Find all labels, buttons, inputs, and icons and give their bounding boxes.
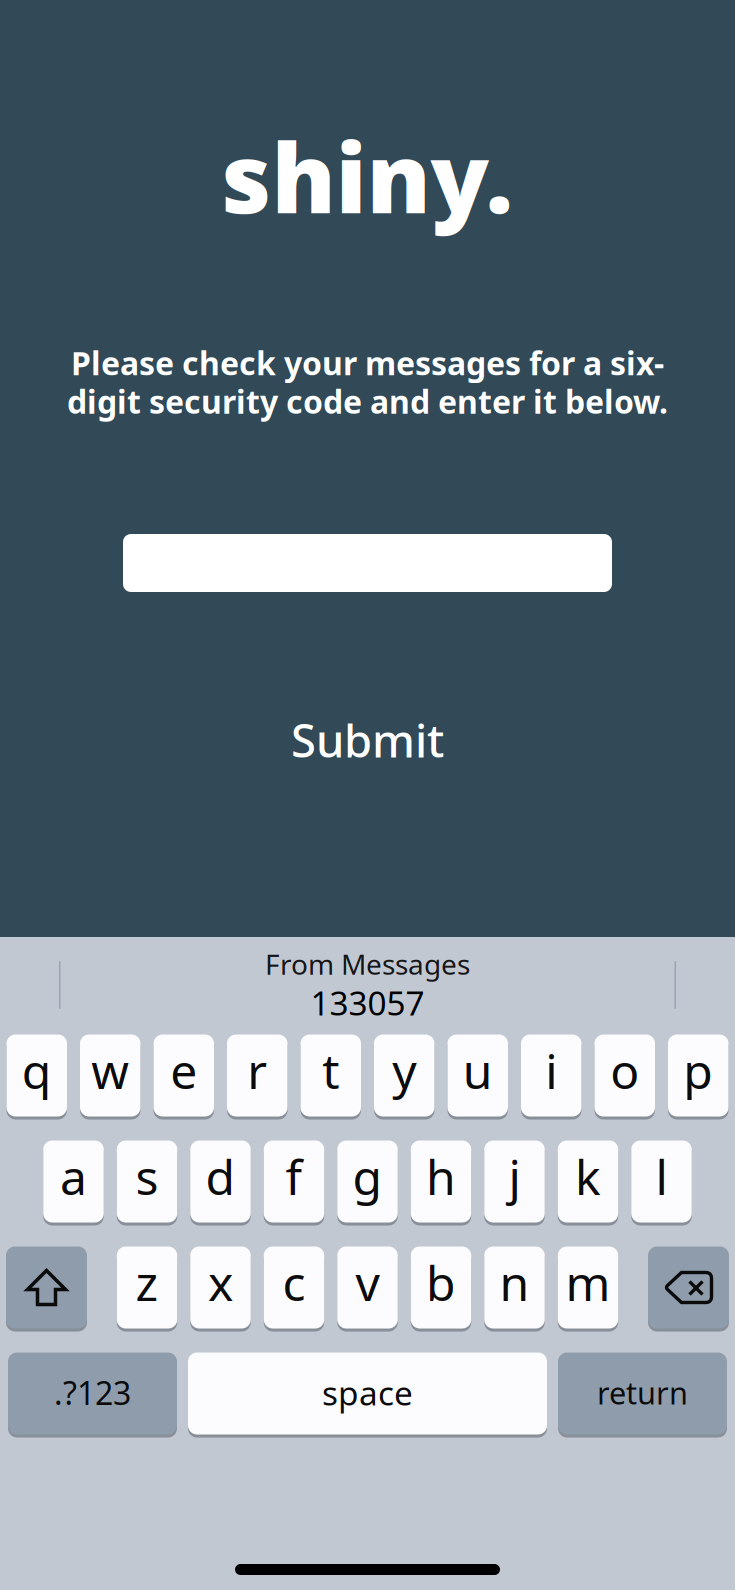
staticText: p [683, 1039, 713, 1102]
button[interactable]: n [484, 1245, 545, 1330]
staticText: space [322, 1370, 413, 1415]
button[interactable]: z [117, 1245, 177, 1330]
button[interactable]: i [521, 1033, 581, 1118]
button[interactable]: Submit [275, 698, 460, 782]
button[interactable]: o [594, 1033, 655, 1118]
staticText: c [282, 1251, 305, 1314]
button[interactable]: j [484, 1139, 545, 1224]
button[interactable]: r [227, 1033, 287, 1118]
staticText: shiny. [221, 112, 513, 240]
staticText: t [322, 1039, 339, 1102]
staticText: digit security code and enter it below. [67, 380, 668, 422]
staticText: l [655, 1145, 667, 1208]
button[interactable]: f [264, 1139, 324, 1224]
button[interactable]: m [558, 1245, 618, 1330]
staticText: i [545, 1039, 557, 1102]
button[interactable]: x [190, 1245, 251, 1330]
staticText: x [208, 1251, 233, 1314]
staticText: d [205, 1145, 235, 1208]
button[interactable]: return [558, 1351, 727, 1436]
staticText: Please check your messages for a six- [71, 341, 664, 384]
button[interactable]: a [43, 1139, 104, 1224]
staticText: j [508, 1145, 520, 1208]
button[interactable]: Delete [648, 1245, 729, 1330]
staticText: y [392, 1039, 416, 1102]
staticText: m [565, 1251, 610, 1314]
button[interactable]: space [188, 1351, 547, 1436]
button[interactable]: .?123 [8, 1351, 177, 1436]
staticText: Submit [291, 710, 444, 770]
staticText: v [355, 1251, 379, 1314]
button[interactable]: k [558, 1139, 618, 1224]
staticText: k [575, 1145, 601, 1208]
button[interactable]: s [117, 1139, 177, 1224]
button[interactable]: y [374, 1033, 434, 1118]
staticText: g [352, 1145, 382, 1208]
staticText: 133057 [310, 980, 424, 1025]
staticText: .?123 [54, 1371, 131, 1414]
staticText: e [170, 1039, 197, 1102]
button[interactable]: Shift [6, 1245, 87, 1330]
button[interactable]: w [80, 1033, 140, 1118]
staticText: r [247, 1039, 267, 1102]
staticText: u [463, 1039, 493, 1102]
button[interactable]: q [6, 1033, 67, 1118]
staticText: w [91, 1039, 129, 1102]
button[interactable]: g [337, 1139, 398, 1224]
staticText: s [135, 1145, 158, 1208]
button[interactable]: d [190, 1139, 251, 1224]
staticText: h [426, 1145, 456, 1208]
staticText: n [499, 1251, 529, 1314]
button[interactable]: v [337, 1245, 398, 1330]
button[interactable]: l [631, 1139, 692, 1224]
button[interactable]: c [264, 1245, 324, 1330]
staticText: a [60, 1145, 87, 1208]
staticText: f [285, 1145, 302, 1208]
button[interactable]: p [668, 1033, 728, 1118]
staticText: return [597, 1372, 688, 1413]
button[interactable]: h [411, 1139, 471, 1224]
button[interactable]: b [411, 1245, 471, 1330]
button[interactable]: u [447, 1033, 508, 1118]
staticText: b [426, 1251, 456, 1314]
staticText: From Messages [265, 945, 470, 982]
staticText: o [610, 1039, 639, 1102]
staticText: z [135, 1251, 158, 1314]
button[interactable]: t [300, 1033, 361, 1118]
button[interactable]: e [153, 1033, 214, 1118]
staticText: q [22, 1039, 52, 1102]
